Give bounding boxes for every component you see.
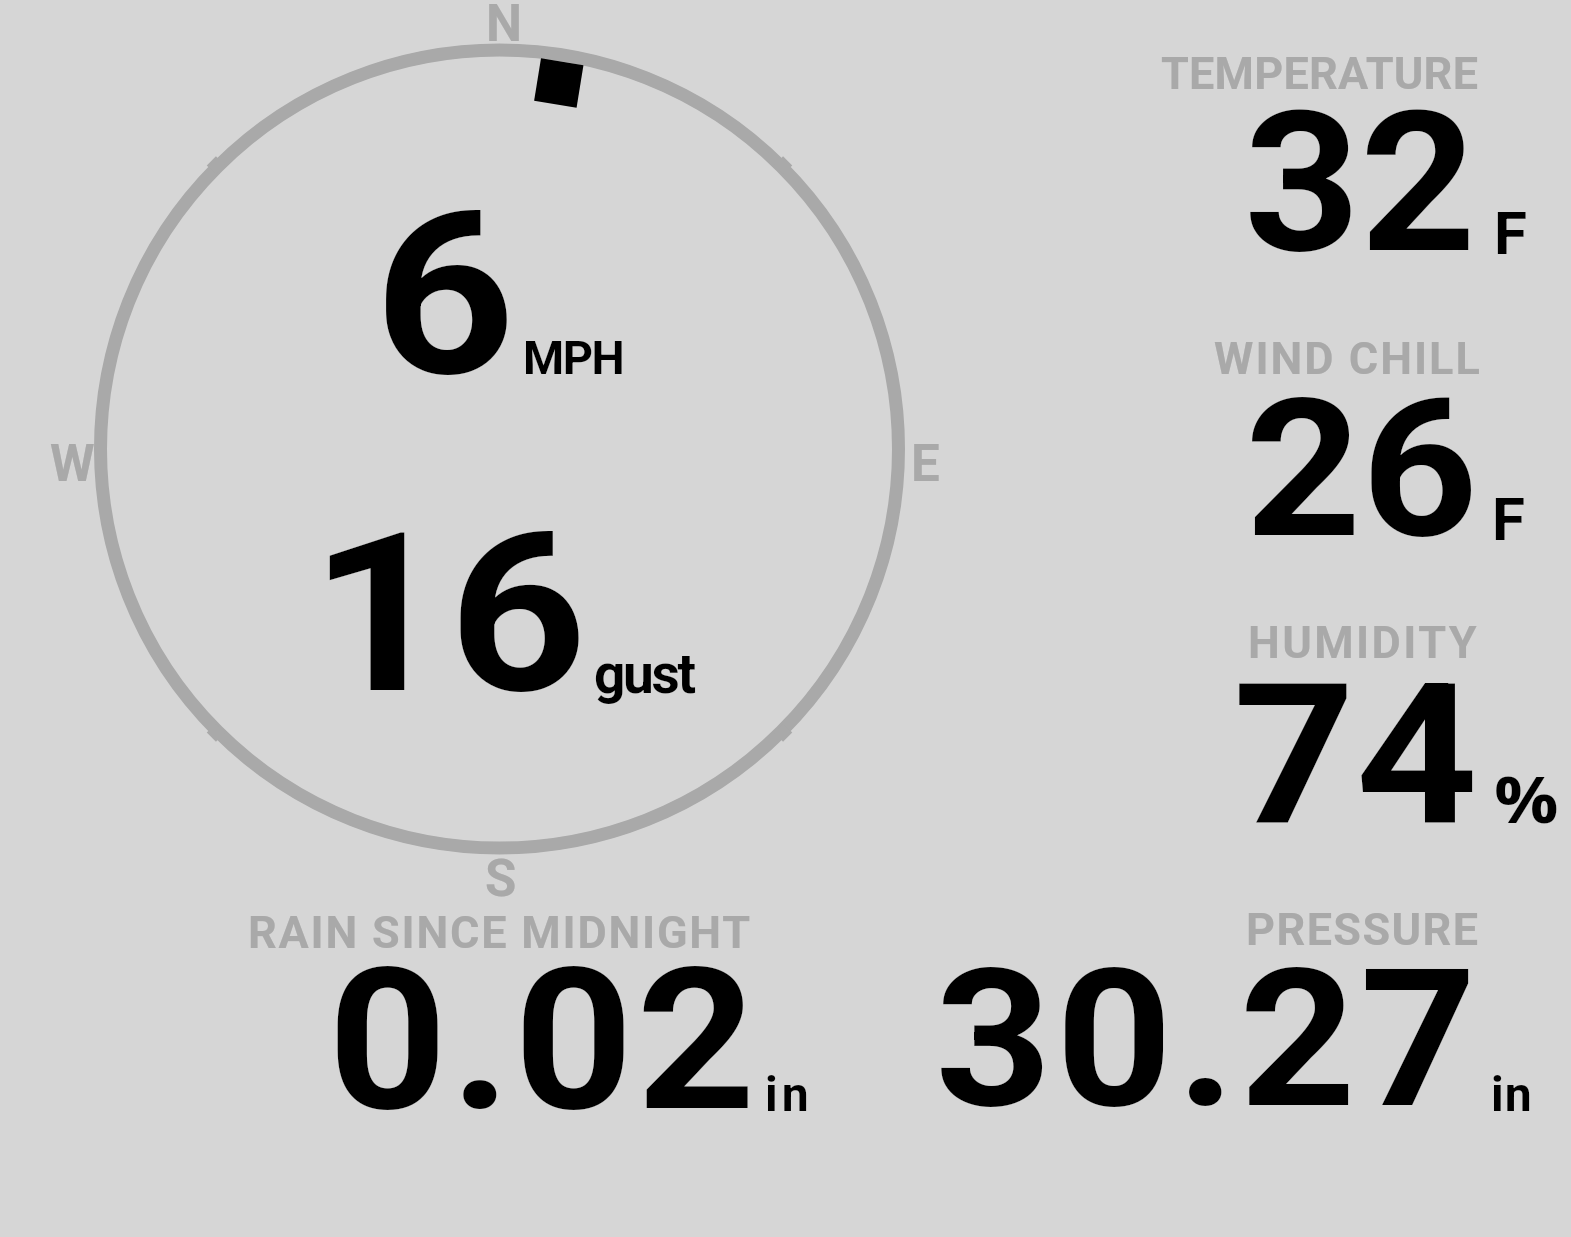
staticText: N <box>486 0 522 54</box>
staticText: WIND CHILL <box>1214 332 1482 385</box>
staticText: TEMPERATURE <box>1161 47 1479 100</box>
staticText: in <box>765 1066 813 1122</box>
staticText: W <box>50 434 95 494</box>
staticText: 16 <box>310 485 588 744</box>
staticText: 74 <box>1233 642 1478 869</box>
staticText: E <box>911 434 940 494</box>
staticText: F <box>1492 484 1525 554</box>
staticText: PRESSURE <box>1246 903 1480 956</box>
staticText: 32 <box>1244 70 1477 297</box>
staticText: MPH <box>523 330 624 385</box>
staticText: S <box>485 849 517 909</box>
button[interactable]: Wind direction dial <box>94 44 906 856</box>
staticText: RAIN SINCE MIDNIGHT <box>248 906 752 959</box>
staticText: % <box>1494 755 1559 842</box>
staticText: gust <box>594 642 694 706</box>
staticText: 26 <box>1245 358 1479 582</box>
button[interactable]: Wind chill 26 F <box>1140 325 1560 555</box>
staticText: 6 <box>374 163 516 428</box>
button[interactable]: Rain since midnight 0.02 in <box>230 896 830 1121</box>
button[interactable]: Pressure 30.27 in <box>900 896 1560 1121</box>
staticText: F <box>1494 198 1527 268</box>
staticText: in <box>1491 1066 1533 1122</box>
button[interactable]: Temperature 32 F <box>1140 40 1560 270</box>
button[interactable]: Humidity 74 percent <box>1140 610 1560 840</box>
staticText: 30.27 <box>935 927 1481 1152</box>
staticText: 0.02 <box>328 926 759 1156</box>
staticText: HUMIDITY <box>1248 616 1480 669</box>
